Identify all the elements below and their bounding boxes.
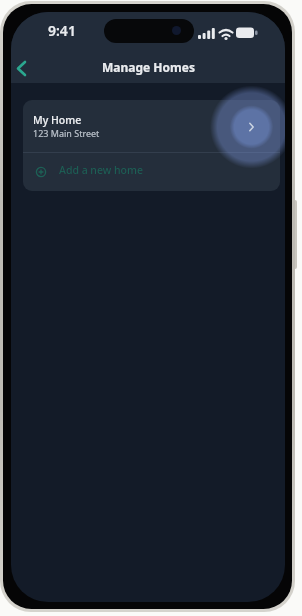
staticText: Manage Homes	[102, 59, 195, 75]
staticText: Add a new home	[59, 163, 143, 177]
staticText: 123 Main Street	[33, 127, 100, 139]
button[interactable]	[11, 54, 30, 82]
staticText: 9:41	[48, 21, 76, 40]
button[interactable]: My Home	[23, 100, 280, 152]
button[interactable]: Add a new home	[23, 153, 280, 191]
staticText: My Home	[33, 113, 82, 127]
